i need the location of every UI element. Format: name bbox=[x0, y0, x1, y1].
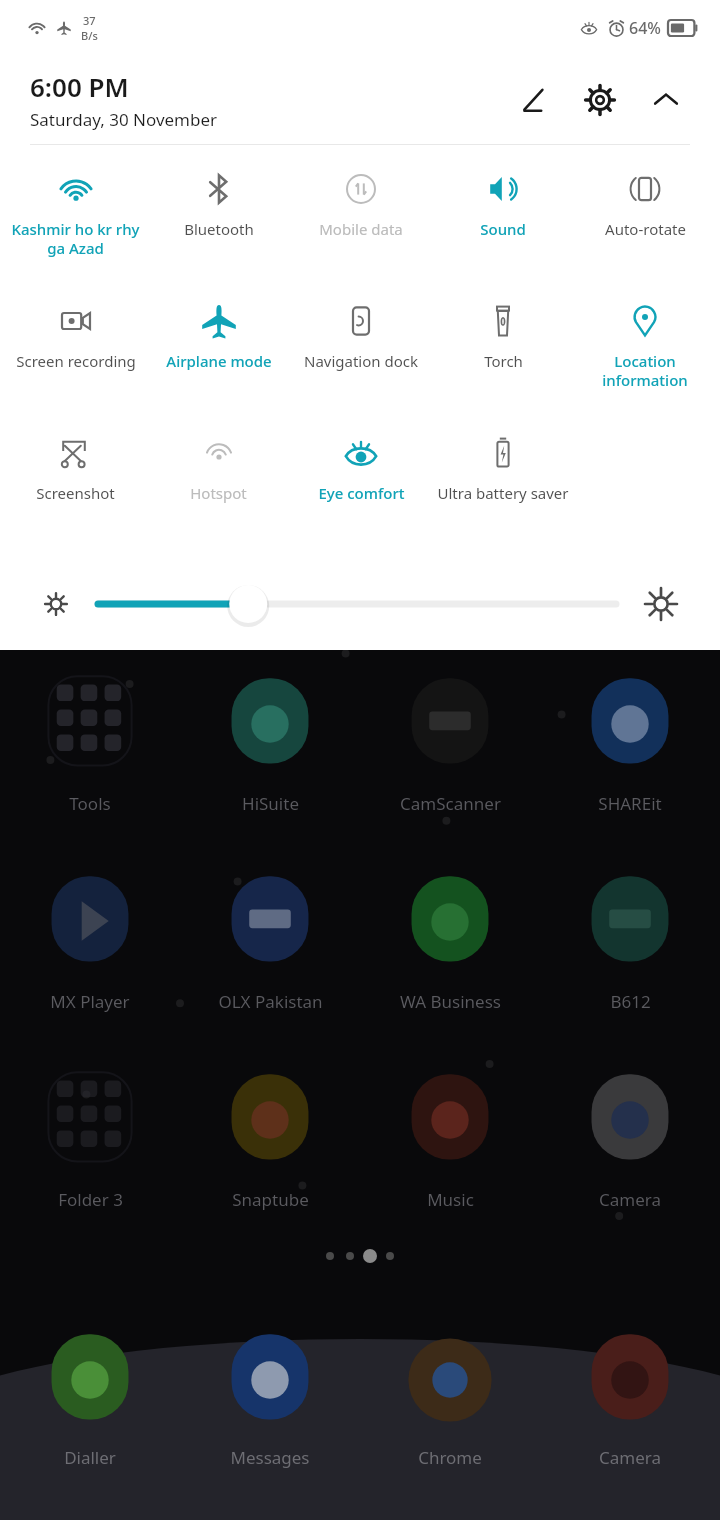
staticText: Saturday, 30 November bbox=[30, 108, 218, 131]
button[interactable]: Dialler bbox=[0, 1328, 180, 1469]
staticText: Music bbox=[427, 1188, 474, 1211]
button[interactable]: B612 bbox=[540, 858, 720, 1013]
button[interactable]: Snaptube bbox=[180, 1056, 360, 1211]
button[interactable]: Camera bbox=[540, 1056, 720, 1211]
button[interactable]: Torch bbox=[434, 301, 572, 371]
button[interactable]: Folder 3 bbox=[0, 1056, 180, 1211]
button[interactable]: CamScanner bbox=[360, 660, 540, 815]
button[interactable]: Settings bbox=[576, 76, 624, 124]
staticText: Ultra battery saver bbox=[437, 483, 569, 503]
staticText: 6:00 PM bbox=[30, 69, 129, 104]
staticText: B612 bbox=[610, 990, 651, 1013]
other: High brightness bbox=[642, 585, 680, 623]
staticText: Location information bbox=[576, 351, 714, 390]
staticText: Tools bbox=[69, 792, 111, 815]
button[interactable]: Navigation dock bbox=[292, 301, 430, 371]
other: Low brightness bbox=[40, 588, 72, 620]
button[interactable]: Mobile data bbox=[292, 169, 430, 239]
staticText: MX Player bbox=[50, 990, 130, 1013]
staticText: Bluetooth bbox=[184, 219, 254, 239]
button[interactable]: SHAREit bbox=[540, 660, 720, 815]
button[interactable]: OLX Pakistan bbox=[180, 858, 360, 1013]
button[interactable]: Hotspot bbox=[149, 433, 288, 503]
staticText: Navigation dock bbox=[304, 351, 418, 371]
button[interactable]: Messages bbox=[180, 1328, 360, 1469]
button[interactable]: Auto-rotate bbox=[576, 169, 714, 239]
staticText: Camera bbox=[599, 1188, 661, 1211]
button[interactable]: Chrome bbox=[360, 1328, 540, 1469]
button[interactable]: Camera bbox=[540, 1328, 720, 1469]
button[interactable]: Location information bbox=[576, 301, 714, 390]
staticText: Messages bbox=[230, 1446, 310, 1469]
staticText: SHAREit bbox=[598, 792, 662, 815]
button[interactable]: Tools bbox=[0, 660, 180, 815]
button[interactable]: Collapse bbox=[642, 76, 690, 124]
staticText: WA Business bbox=[400, 990, 501, 1013]
staticText: Screen recording bbox=[16, 351, 136, 371]
staticText: Mobile data bbox=[319, 219, 403, 239]
button[interactable]: Eye comfort bbox=[292, 433, 430, 503]
staticText: 37 bbox=[83, 13, 96, 28]
button[interactable]: Airplane mode bbox=[149, 301, 288, 371]
button[interactable]: Screen recording bbox=[6, 301, 145, 371]
staticText: Folder 3 bbox=[58, 1188, 123, 1211]
staticText: Chrome bbox=[418, 1446, 482, 1469]
button[interactable]: Sound bbox=[434, 169, 572, 239]
staticText: Airplane mode bbox=[166, 351, 272, 371]
staticText: Torch bbox=[484, 351, 523, 371]
button[interactable]: Screenshot bbox=[6, 433, 145, 503]
staticText: OLX Pakistan bbox=[218, 990, 323, 1013]
staticText: B/s bbox=[81, 28, 98, 43]
staticText: Dialler bbox=[64, 1446, 116, 1469]
staticText: HiSuite bbox=[242, 792, 299, 815]
staticText: Auto-rotate bbox=[605, 219, 686, 239]
button[interactable]: Music bbox=[360, 1056, 540, 1211]
staticText: Sound bbox=[480, 219, 526, 239]
staticText: Snaptube bbox=[232, 1188, 309, 1211]
button[interactable]: Bluetooth bbox=[149, 169, 288, 239]
staticText: CamScanner bbox=[400, 792, 501, 815]
button[interactable]: Ultra battery saver bbox=[434, 433, 572, 503]
button[interactable]: Kashmir ho kr rhy ga Azad bbox=[6, 169, 145, 258]
button[interactable]: Edit bbox=[510, 76, 558, 124]
staticText: Kashmir ho kr rhy ga Azad bbox=[6, 219, 145, 258]
staticText: Screenshot bbox=[36, 483, 115, 503]
staticText: Camera bbox=[599, 1446, 661, 1469]
button[interactable] bbox=[98, 586, 616, 622]
staticText: Eye comfort bbox=[318, 483, 405, 503]
staticText: 64% bbox=[629, 17, 661, 39]
button[interactable]: HiSuite bbox=[180, 660, 360, 815]
staticText: Hotspot bbox=[190, 483, 247, 503]
button[interactable]: MX Player bbox=[0, 858, 180, 1013]
button[interactable]: WA Business bbox=[360, 858, 540, 1013]
